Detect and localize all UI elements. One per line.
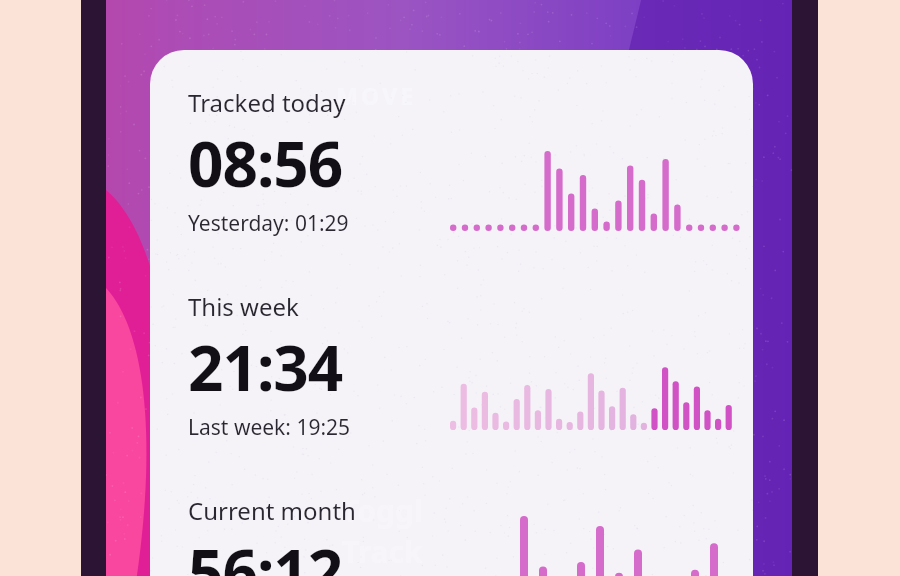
staticText: Toggl (342, 490, 423, 531)
staticText: Tracked today (188, 86, 346, 119)
button[interactable]: Current month (150, 494, 753, 576)
staticText: 08:56 (188, 121, 343, 205)
button[interactable]: Tracked today (150, 86, 753, 290)
staticText: Yesterday: 01:29 (188, 209, 349, 238)
button[interactable]: This week (150, 290, 753, 494)
staticText: MOVE (336, 80, 417, 111)
staticText: This week (188, 290, 299, 323)
staticText: 56:12 (188, 529, 343, 576)
staticText: MOVE (336, 80, 417, 111)
staticText: Current month (188, 494, 356, 527)
staticText: Last week: 19:25 (188, 413, 351, 442)
staticText: 21:34 (188, 325, 343, 409)
